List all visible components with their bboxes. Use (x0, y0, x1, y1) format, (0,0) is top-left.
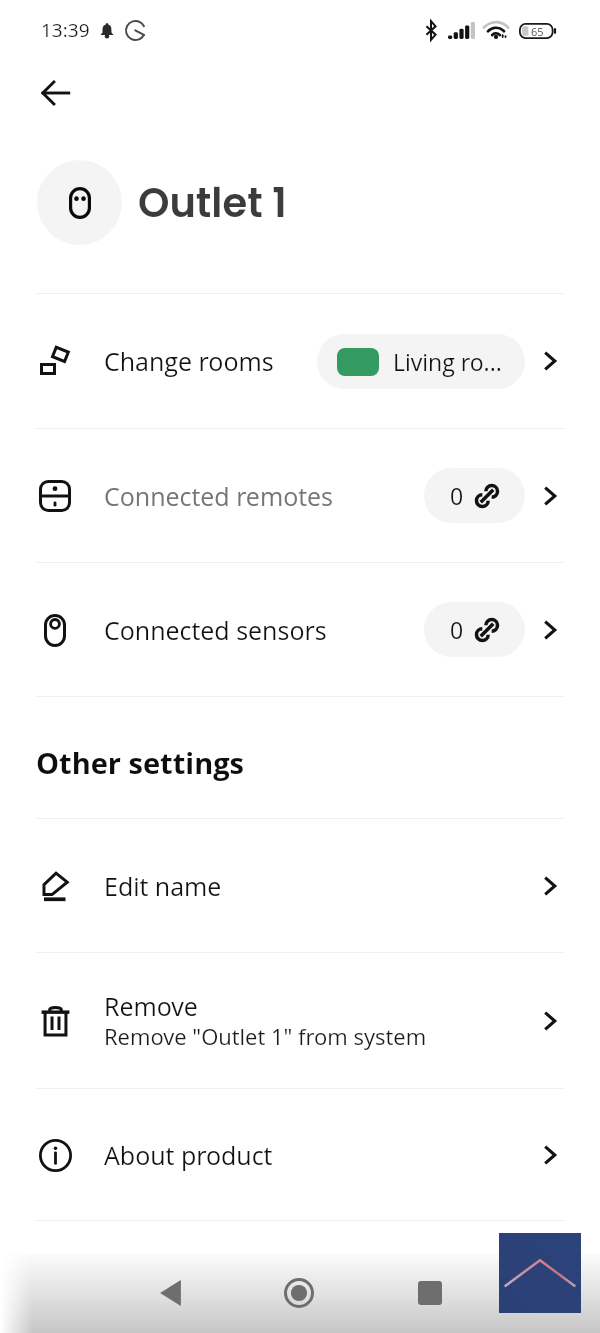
button[interactable]: Change rooms (0, 294, 600, 428)
staticText: 65 (531, 24, 544, 39)
staticText: About product (104, 1138, 273, 1172)
staticText: Other settings (36, 743, 244, 782)
staticText: Connected remotes (104, 479, 334, 513)
staticText: 0 (450, 614, 464, 645)
button[interactable]: Home (271, 1265, 327, 1321)
staticText: Edit name (104, 869, 222, 903)
button[interactable]: Connected sensors (0, 563, 600, 696)
button[interactable]: Remove (0, 953, 600, 1088)
staticText: Remove "Outlet 1" from system (104, 1021, 427, 1051)
button[interactable]: 0 (424, 468, 525, 523)
staticText: 13:39 (41, 17, 90, 43)
button[interactable]: Back (143, 1265, 199, 1321)
button[interactable]: Overlay shortcut (499, 1233, 581, 1313)
staticText: 0 (450, 480, 464, 511)
button[interactable]: 0 (424, 602, 525, 657)
staticText: Outlet 1 (138, 175, 287, 231)
button[interactable]: Connected remotes (0, 429, 600, 562)
button[interactable]: Edit name (0, 819, 600, 952)
button[interactable]: Back (31, 69, 79, 117)
button[interactable]: Recent apps (402, 1265, 458, 1321)
staticText: Connected sensors (104, 613, 327, 647)
staticText: Living ro... (393, 346, 502, 377)
button[interactable]: About product (0, 1089, 600, 1220)
staticText: Remove (104, 989, 198, 1023)
button[interactable]: Living ro... (317, 334, 525, 389)
staticText: Change rooms (104, 344, 274, 378)
